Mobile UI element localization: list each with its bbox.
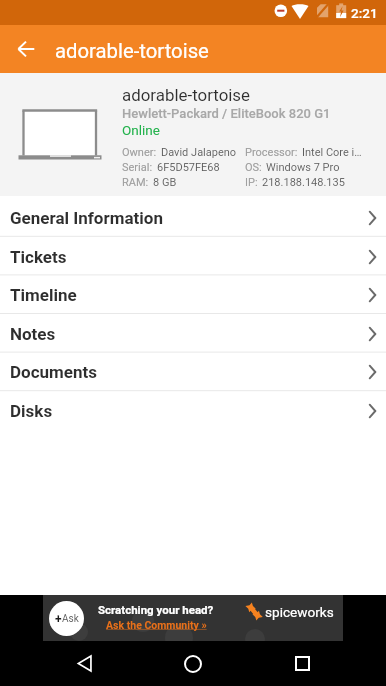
- staticText: 2:21: [351, 5, 378, 21]
- staticText: Owner:: [122, 146, 157, 159]
- button[interactable]: Back: [9, 32, 43, 66]
- staticText: Ask the Community »: [106, 619, 207, 631]
- button[interactable]: +: [43, 595, 343, 641]
- button[interactable]: Notes: [0, 312, 386, 351]
- staticText: RAM:: [122, 176, 149, 189]
- staticText: 6F5D57FE68: [157, 161, 220, 174]
- staticText: Online: [122, 122, 160, 138]
- staticText: 8 GB: [153, 176, 177, 189]
- staticText: IP:: [245, 176, 258, 189]
- staticText: Documents: [10, 362, 97, 382]
- staticText: Disks: [10, 401, 53, 421]
- staticText: +: [55, 612, 62, 626]
- staticText: Hewlett-Packard / EliteBook 820 G1: [122, 106, 331, 121]
- button[interactable]: Recents: [278, 641, 326, 686]
- staticText: Processor:: [245, 146, 298, 159]
- staticText: Intel Core i…: [302, 146, 362, 159]
- staticText: spiceworks: [265, 604, 334, 620]
- staticText: David Jalapeno: [161, 146, 237, 159]
- button[interactable]: Timeline: [0, 273, 386, 312]
- staticText: Windows 7 Pro: [266, 161, 340, 174]
- staticText: Notes: [10, 324, 56, 344]
- staticText: Serial:: [122, 161, 153, 174]
- staticText: adorable-tortoise: [55, 39, 209, 63]
- staticText: General Information: [10, 208, 163, 228]
- staticText: Ask: [62, 613, 79, 625]
- staticText: adorable-tortoise: [122, 85, 251, 105]
- staticText: 218.188.148.135: [262, 176, 345, 189]
- button[interactable]: Tickets: [0, 235, 386, 274]
- button[interactable]: General Information: [0, 196, 386, 235]
- button[interactable]: Home: [169, 641, 217, 686]
- staticText: Scratching your head?: [98, 603, 214, 616]
- button[interactable]: Documents: [0, 350, 386, 389]
- staticText: OS:: [245, 161, 262, 174]
- staticText: Timeline: [10, 285, 77, 305]
- button[interactable]: Back: [61, 641, 109, 686]
- button[interactable]: Disks: [0, 389, 386, 428]
- staticText: Tickets: [10, 247, 67, 267]
